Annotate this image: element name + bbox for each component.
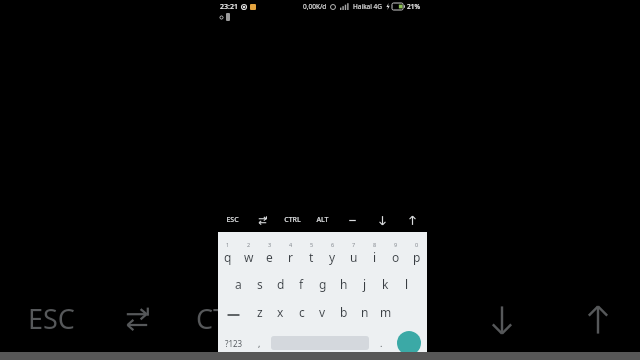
button[interactable]: 3 [259, 236, 280, 270]
staticText: p [413, 249, 421, 265]
staticText: i [373, 249, 377, 265]
button[interactable]: a [228, 270, 249, 298]
staticText: 4 [289, 241, 293, 248]
button[interactable]: Minus [337, 208, 367, 232]
staticText: Haikal 4G [353, 2, 383, 11]
button[interactable]: 0 [406, 236, 427, 270]
staticText: s [257, 276, 263, 292]
button[interactable]: ?123 [218, 326, 250, 360]
staticText: 23:21 [220, 2, 238, 12]
staticText: ?123 [225, 338, 243, 349]
button[interactable]: Arrow up [397, 208, 427, 232]
button[interactable]: j [354, 270, 375, 298]
staticText: 7 [352, 241, 356, 248]
staticText: z [257, 304, 263, 320]
button[interactable]: , [250, 326, 268, 360]
staticText: 1 [226, 241, 230, 248]
button[interactable]: ALT [307, 208, 337, 232]
button[interactable]: b [333, 298, 354, 326]
staticText: 0 [415, 241, 419, 248]
button[interactable]: Enter [390, 326, 427, 360]
staticText: 6 [331, 241, 335, 248]
button[interactable]: . [372, 326, 390, 360]
staticText: , [258, 337, 261, 349]
staticText: 9 [394, 241, 398, 248]
staticText: w [244, 249, 254, 265]
staticText: 8 [373, 241, 377, 248]
button[interactable]: Tab [116, 298, 158, 340]
staticText: . [380, 337, 383, 349]
button[interactable]: x [270, 298, 291, 326]
button[interactable]: Arrow down [367, 208, 397, 232]
button[interactable]: c [291, 298, 312, 326]
staticText: a [235, 276, 242, 292]
staticText: f [299, 276, 304, 292]
staticText: 0,00K/d [303, 2, 327, 11]
button[interactable]: CTRL [190, 296, 266, 341]
staticText: n [361, 304, 369, 320]
button[interactable]: z [249, 298, 270, 326]
staticText: CTRL [196, 300, 260, 337]
button[interactable]: h [333, 270, 354, 298]
staticText: ALT [316, 215, 329, 225]
staticText: e [266, 249, 273, 265]
staticText: ESC [28, 300, 75, 337]
button[interactable]: v [312, 298, 333, 326]
button[interactable]: 8 [364, 236, 385, 270]
staticText: y [329, 249, 336, 265]
button[interactable]: CTRL [277, 208, 307, 232]
staticText: g [319, 276, 327, 292]
staticText: ESC [226, 215, 239, 225]
button[interactable]: Arrow up [574, 296, 622, 344]
button[interactable]: n [354, 298, 375, 326]
staticText: k [382, 276, 389, 292]
button[interactable]: ESC [218, 208, 247, 232]
button[interactable]: Arrow down [478, 296, 526, 344]
button[interactable]: ESC [22, 296, 81, 341]
button[interactable]: Tab [247, 208, 277, 232]
staticText: q [224, 249, 232, 265]
button[interactable]: 6 [322, 236, 343, 270]
button[interactable]: l [396, 270, 417, 298]
button[interactable]: 1 [218, 236, 238, 270]
button[interactable]: 9 [385, 236, 406, 270]
staticText: h [340, 276, 348, 292]
staticText: u [350, 249, 358, 265]
button[interactable]: Shift [218, 298, 249, 326]
staticText: b [340, 304, 348, 320]
staticText: v [319, 304, 326, 320]
button[interactable]: g [312, 270, 333, 298]
staticText: c [299, 304, 305, 320]
staticText: 2 [247, 241, 251, 248]
button[interactable]: k [375, 270, 396, 298]
staticText: o [392, 249, 400, 265]
staticText: t [309, 249, 314, 265]
staticText: 3 [268, 241, 272, 248]
staticText: 5 [310, 241, 314, 248]
staticText: 21% [407, 2, 420, 11]
button[interactable]: m [375, 298, 396, 326]
staticText: d [277, 276, 285, 292]
button[interactable]: s [249, 270, 270, 298]
button[interactable]: 4 [280, 236, 301, 270]
staticText: r [288, 249, 293, 265]
button[interactable]: f [291, 270, 312, 298]
staticText: CTRL [284, 215, 301, 225]
button[interactable]: 2 [238, 236, 259, 270]
button[interactable]: 7 [343, 236, 364, 270]
button[interactable]: 5 [301, 236, 322, 270]
staticText: l [405, 276, 409, 292]
staticText: m [380, 304, 392, 320]
button[interactable]: d [270, 270, 291, 298]
staticText: j [363, 276, 367, 292]
staticText: x [277, 304, 284, 320]
